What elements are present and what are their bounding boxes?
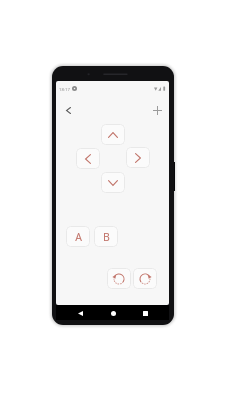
button[interactable]: Rotate left [107, 268, 131, 289]
staticText: A [75, 230, 82, 244]
staticText: 18:17 [59, 86, 70, 92]
button[interactable]: Rotate right [133, 268, 157, 289]
button[interactable]: Add [149, 102, 165, 118]
button[interactable]: Back [60, 102, 76, 118]
button[interactable]: Right [126, 147, 150, 168]
button[interactable]: Down [101, 172, 125, 193]
button[interactable]: Home [107, 307, 119, 319]
button[interactable]: Left [76, 148, 100, 169]
staticText: B [103, 230, 110, 244]
button[interactable]: B [94, 226, 118, 247]
button[interactable]: A [66, 226, 90, 247]
button[interactable]: Back [74, 307, 86, 319]
button[interactable]: Recents [139, 307, 151, 319]
button[interactable]: Up [101, 124, 125, 145]
